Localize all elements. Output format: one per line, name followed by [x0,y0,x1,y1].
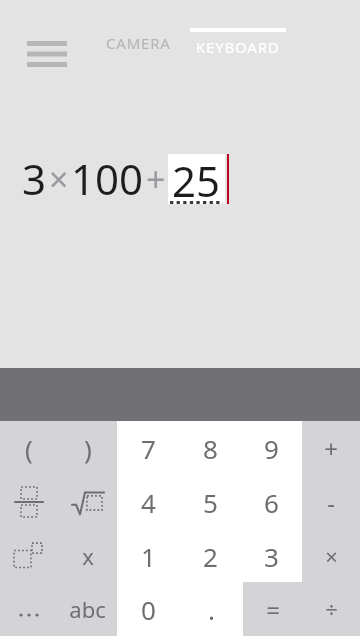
button[interactable]: 3 [240,529,302,583]
staticText: ( [25,431,33,466]
button[interactable]: 8 [179,421,241,475]
button[interactable]: + [302,421,360,475]
staticText: 1 [141,539,156,574]
staticText: x [82,541,94,571]
button[interactable]: 2 [179,529,241,583]
staticText: + [324,432,338,465]
staticText: ) [84,431,92,466]
staticText: 6 [264,485,279,520]
button[interactable]: Fraction [0,475,58,529]
button[interactable]: ( [0,421,58,475]
button[interactable]: 6 [240,475,302,529]
staticText: . [208,592,215,627]
staticText: - [327,486,335,519]
staticText: 8 [203,431,218,466]
button[interactable]: CAMERA [96,22,180,64]
staticText: KEYBOARD [196,37,280,57]
button[interactable]: 0 [117,582,180,636]
button[interactable]: . [180,582,243,636]
staticText: 7 [141,431,156,466]
staticText: 25 [172,152,221,202]
staticText: = [266,593,280,626]
staticText: 5 [203,485,218,520]
staticText: 3 [22,150,47,207]
staticText: abc [69,594,106,624]
staticText: 2 [203,539,218,574]
button[interactable]: KEYBOARD [186,22,290,64]
button[interactable]: Menu [14,28,80,80]
button[interactable]: abc [58,582,117,636]
button[interactable]: 1 [117,529,179,583]
button[interactable]: - [302,475,360,529]
button[interactable]: 4 [117,475,179,529]
staticText: 9 [264,431,279,466]
button[interactable]: More [0,582,58,636]
button[interactable]: ÷ [302,582,360,636]
button[interactable]: = [243,582,302,636]
button[interactable]: Square root [58,475,117,529]
button[interactable]: Power [0,529,58,583]
staticText: 100 [71,150,144,207]
button[interactable]: 9 [240,421,302,475]
staticText: + [146,156,166,202]
button[interactable]: 5 [179,475,241,529]
button[interactable]: x [58,529,117,583]
button[interactable]: × [302,529,360,583]
staticText: × [49,156,69,202]
staticText: CAMERA [106,33,171,53]
staticText: 4 [141,485,156,520]
staticText: × [325,541,338,571]
staticText: 0 [141,592,156,627]
button[interactable]: 7 [117,421,179,475]
staticText: 3 [264,539,279,574]
staticText: ÷ [325,594,338,624]
button[interactable]: ) [58,421,117,475]
